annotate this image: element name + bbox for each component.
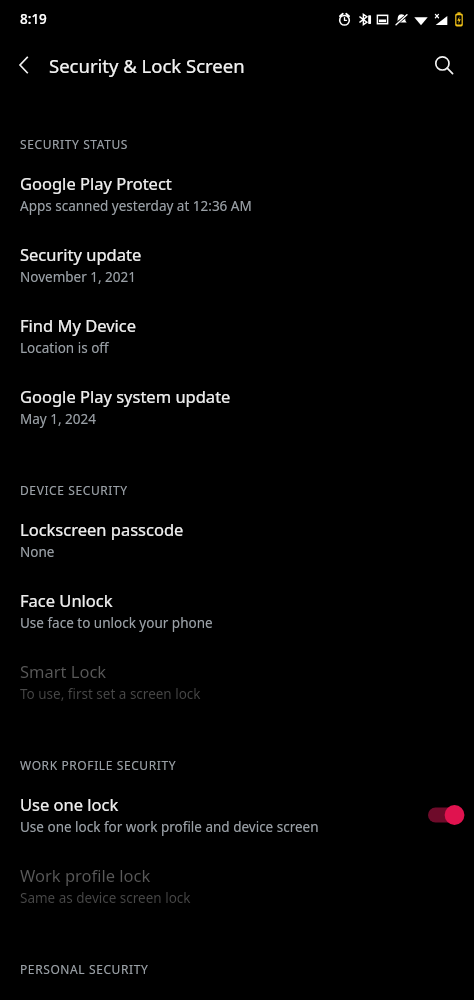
staticText: Google Play Protect [20,172,172,194]
staticText: Work profile lock [20,864,151,886]
button[interactable]: Back [0,41,48,89]
staticText: PERSONAL SECURITY [20,961,149,977]
button[interactable]: Work profile lock [0,862,474,933]
button[interactable]: Security update [0,241,474,312]
staticText: Smart Lock [20,660,107,682]
staticText: To use, first set a screen lock [20,685,201,703]
button[interactable]: Google Play Protect [0,170,474,241]
button[interactable]: Search [420,41,468,89]
button[interactable]: Face Unlock [0,587,474,658]
button[interactable]: Lockscreen passcode [0,516,474,587]
staticText: Same as device screen lock [20,889,191,907]
staticText: May 1, 2024 [20,410,96,428]
button[interactable]: Use one lock toggle [428,800,474,830]
button[interactable]: Smart Lock [0,658,474,729]
staticText: Find My Device [20,314,137,336]
staticText: November 1, 2021 [20,268,136,286]
staticText: DEVICE SECURITY [20,482,128,498]
staticText: SECURITY STATUS [20,136,129,152]
staticText: Security update [20,243,142,265]
staticText: Lockscreen passcode [20,518,184,540]
staticText: Google Play system update [20,385,231,407]
staticText: Location is off [20,339,109,357]
button[interactable]: Find My Device [0,312,474,383]
staticText: Use one lock [20,793,119,815]
staticText: 8:19 [20,10,47,28]
staticText: Security & Lock Screen [49,53,245,78]
button[interactable]: Google Play system update [0,383,474,454]
staticText: Use one lock for work profile and device… [20,818,319,836]
staticText: None [20,543,55,561]
staticText: WORK PROFILE SECURITY [20,757,177,773]
staticText: Use face to unlock your phone [20,614,213,632]
staticText: Face Unlock [20,589,113,611]
staticText: Apps scanned yesterday at 12:36 AM [20,197,252,215]
button[interactable]: Use one lock [0,791,474,862]
